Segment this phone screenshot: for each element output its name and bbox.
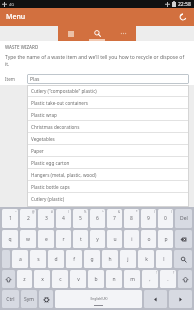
- button[interactable]: q: [2, 230, 18, 248]
- button[interactable]: back: [175, 230, 192, 248]
- staticText: Plastic bottle caps: [31, 184, 70, 190]
- button[interactable]: u: [107, 230, 122, 248]
- button[interactable]: Plastic take-out containers: [27, 97, 189, 109]
- button[interactable]: l: [156, 250, 172, 268]
- button[interactable]: search: [174, 250, 192, 268]
- button[interactable]: h: [102, 250, 118, 268]
- staticText: h: [108, 256, 112, 263]
- button[interactable]: s: [30, 250, 46, 268]
- staticText: 7: [113, 215, 116, 222]
- button[interactable]: Plastic bottle caps: [27, 181, 189, 193]
- button[interactable]: right: [169, 290, 192, 308]
- button[interactable]: English(UK): [55, 290, 142, 308]
- button[interactable]: Grid: [58, 26, 84, 41]
- button[interactable]: .: [160, 270, 176, 288]
- staticText: b: [94, 276, 98, 283]
- button[interactable]: Hangers (metal, plastic, wood): [27, 169, 189, 181]
- button[interactable]: n: [106, 270, 122, 288]
- button[interactable]: 2: [20, 209, 36, 228]
- staticText: 0: [164, 215, 167, 222]
- button[interactable]: Sym: [21, 290, 37, 308]
- button[interactable]: Cutlery (plastic): [27, 193, 189, 205]
- button[interactable]: Search: [84, 26, 110, 41]
- button[interactable]: p: [158, 230, 173, 248]
- button[interactable]: c: [52, 270, 68, 288]
- button[interactable]: shift: [178, 270, 192, 288]
- staticText: Cutlery (plastic): [31, 196, 65, 202]
- button[interactable]: 8: [124, 209, 139, 228]
- button[interactable]: settings: [39, 290, 53, 308]
- staticText: v: [77, 276, 80, 283]
- button[interactable]: g: [84, 250, 100, 268]
- staticText: a: [19, 256, 22, 263]
- staticText: 3: [45, 215, 48, 222]
- staticText: s: [37, 256, 40, 263]
- staticText: Plastic egg carton: [31, 160, 70, 166]
- staticText: &: [118, 210, 121, 214]
- button[interactable]: Cutlery ("compostable" plastic): [27, 85, 189, 97]
- button[interactable]: 4: [56, 209, 71, 228]
- staticText: Ctrl: [6, 296, 15, 303]
- button[interactable]: d: [48, 250, 64, 268]
- staticText: l: [163, 256, 165, 263]
- staticText: %: [84, 210, 87, 214]
- button[interactable]: 6: [90, 209, 105, 228]
- staticText: d: [54, 256, 58, 263]
- button[interactable]: Plastic wrap: [27, 109, 189, 121]
- button[interactable]: 9: [141, 209, 156, 228]
- button[interactable]: 0: [158, 209, 173, 228]
- button[interactable]: Ctrl: [2, 290, 19, 308]
- staticText: x: [41, 276, 44, 283]
- button[interactable]: k: [138, 250, 154, 268]
- button[interactable]: z: [17, 270, 32, 288]
- button[interactable]: r: [56, 230, 71, 248]
- button[interactable]: b: [88, 270, 104, 288]
- button[interactable]: Refresh: [176, 10, 190, 24]
- button[interactable]: 5: [73, 209, 88, 228]
- button[interactable]: t: [73, 230, 88, 248]
- button[interactable]: y: [90, 230, 105, 248]
- button[interactable]: f: [66, 250, 82, 268]
- staticText: ,: [149, 276, 151, 283]
- button[interactable]: left: [144, 290, 167, 308]
- staticText: c: [59, 276, 62, 283]
- button[interactable]: j: [120, 250, 136, 268]
- button[interactable]: shift: [2, 270, 15, 288]
- button[interactable]: m: [124, 270, 140, 288]
- button[interactable]: 1: [2, 209, 18, 228]
- staticText: 8: [130, 215, 133, 222]
- staticText: j: [127, 256, 129, 263]
- staticText: Plas: [30, 76, 40, 83]
- staticText: m: [130, 276, 135, 283]
- button[interactable]: ,: [142, 270, 158, 288]
- button[interactable]: x: [34, 270, 50, 288]
- staticText: Del: [180, 215, 188, 222]
- staticText: o: [147, 236, 151, 243]
- button[interactable]: e: [38, 230, 54, 248]
- staticText: WASTE WIZARD: [5, 44, 39, 50]
- button[interactable]: 3: [38, 209, 54, 228]
- button[interactable]: Paper: [27, 145, 189, 157]
- button[interactable]: w: [20, 230, 36, 248]
- button[interactable]: o: [141, 230, 156, 248]
- staticText: ): [171, 210, 172, 214]
- staticText: Menu: [6, 12, 26, 22]
- button[interactable]: Plas: [27, 74, 189, 84]
- button[interactable]: Plastic egg carton: [27, 157, 189, 169]
- staticText: Cutlery ("compostable" plastic): [31, 88, 97, 94]
- staticText: #: [51, 210, 53, 214]
- staticText: Item: [5, 76, 27, 82]
- button[interactable]: Christmas decorations: [27, 121, 189, 133]
- button[interactable]: Del: [175, 209, 192, 228]
- staticText: Christmas decorations: [31, 124, 80, 130]
- button[interactable]: v: [70, 270, 86, 288]
- staticText: k: [145, 256, 148, 263]
- button[interactable]: More options: [110, 26, 136, 41]
- button[interactable]: 7: [107, 209, 122, 228]
- staticText: /: [68, 210, 70, 214]
- staticText: f: [73, 256, 75, 263]
- button[interactable]: a: [12, 250, 28, 268]
- button[interactable]: Vegetables: [27, 133, 189, 145]
- button[interactable]: i: [124, 230, 139, 248]
